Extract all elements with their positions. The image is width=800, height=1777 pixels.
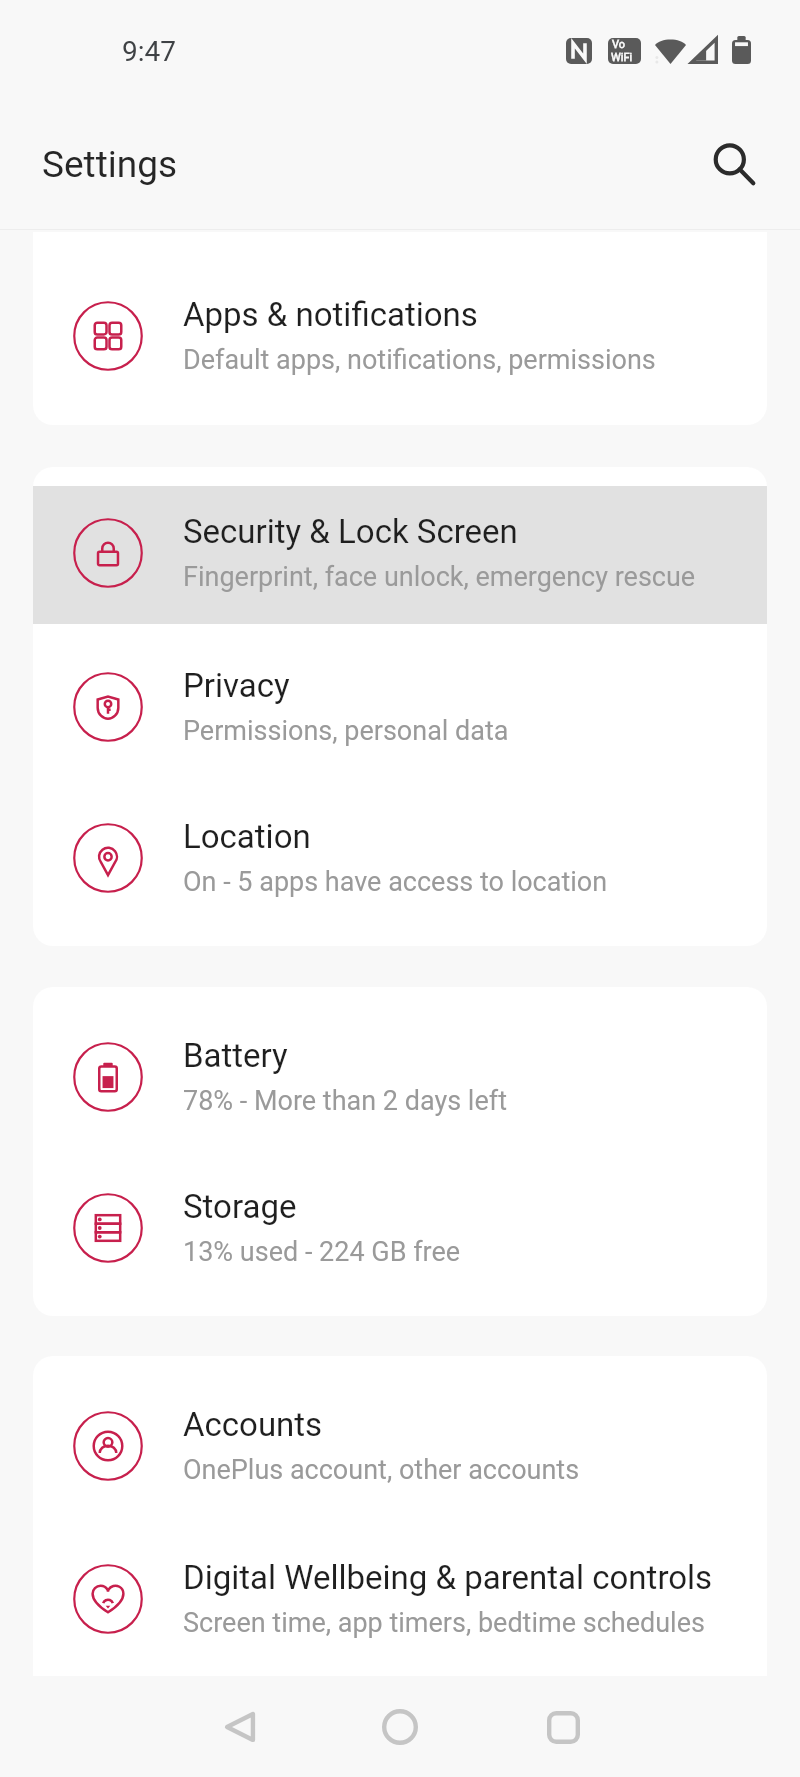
button[interactable]: Home [344, 1677, 456, 1777]
button[interactable]: Storage [33, 1154, 767, 1302]
staticText: Security & Lock Screen [183, 511, 518, 551]
staticText: Location [183, 816, 311, 856]
button[interactable]: Location [33, 784, 767, 932]
button[interactable]: Recents [507, 1677, 619, 1777]
button[interactable]: Digital Wellbeing & parental controls [33, 1525, 767, 1673]
button[interactable]: Back [184, 1677, 296, 1777]
staticText: On - 5 apps have access to location [183, 864, 608, 898]
staticText: Default apps, notifications, permissions [183, 342, 656, 376]
staticText: Storage [183, 1186, 297, 1226]
staticText: Apps & notifications [183, 294, 478, 334]
staticText: Privacy [183, 665, 290, 705]
staticText: Digital Wellbeing & parental controls [183, 1557, 713, 1597]
button[interactable]: Apps & notifications [33, 262, 767, 410]
staticText: 9:47 [122, 35, 176, 68]
staticText: 13% used - 224 GB free [183, 1234, 461, 1268]
staticText: Fingerprint, face unlock, emergency resc… [183, 559, 696, 593]
staticText: WiFi [611, 51, 633, 64]
staticText: Screen time, app timers, bedtime schedul… [183, 1605, 705, 1639]
staticText: Permissions, personal data [183, 713, 509, 747]
staticText: Vo [612, 38, 626, 51]
staticText: Battery [183, 1035, 288, 1075]
staticText: Settings [42, 143, 178, 186]
staticText: Accounts [183, 1404, 323, 1444]
staticText: OnePlus account, other accounts [183, 1452, 580, 1486]
staticText: 78% - More than 2 days left [183, 1083, 507, 1117]
button[interactable]: Privacy [33, 633, 767, 781]
button[interactable]: Battery [33, 1003, 767, 1151]
button[interactable]: Accounts [33, 1372, 767, 1520]
button[interactable]: Security & Lock Screen [33, 486, 767, 624]
button[interactable]: Search [699, 129, 769, 199]
